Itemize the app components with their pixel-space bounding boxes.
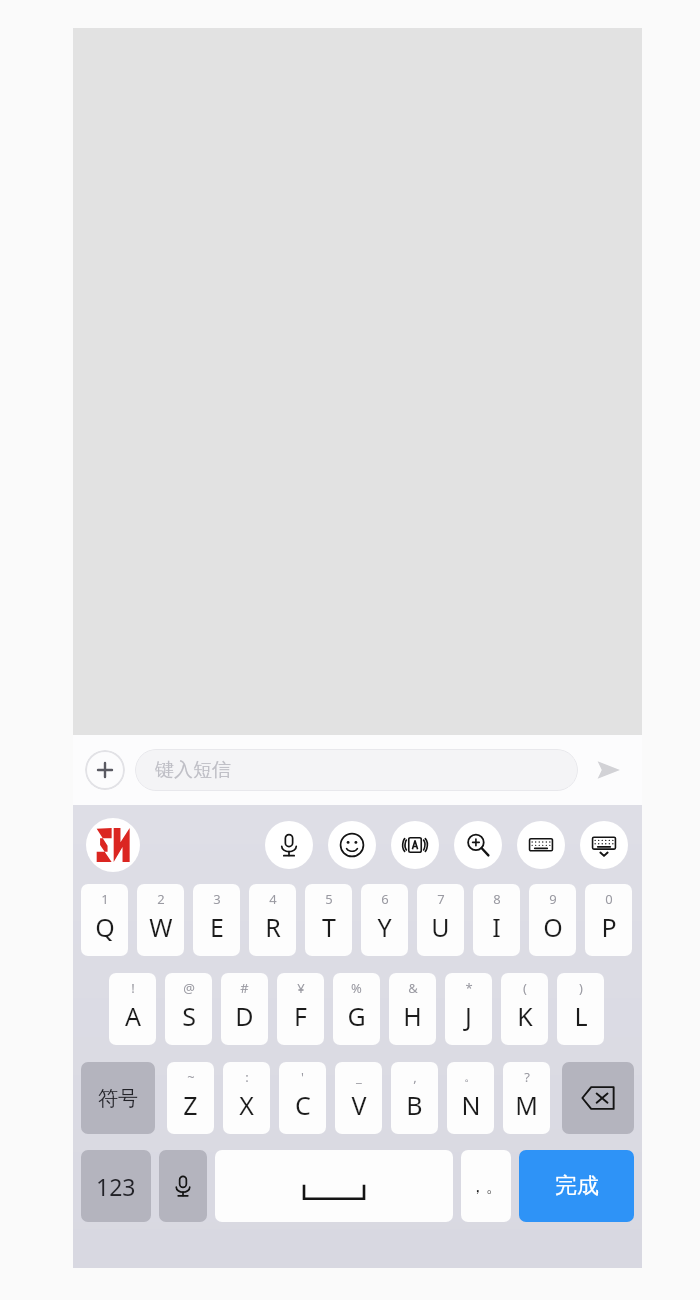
staticText: U — [431, 910, 450, 944]
button[interactable]: Voice input — [265, 821, 313, 869]
staticText: S — [182, 999, 196, 1033]
staticText: , — [413, 1068, 417, 1086]
button[interactable]: & — [389, 973, 436, 1045]
staticText: 1 — [101, 890, 109, 908]
staticText: * — [465, 979, 473, 997]
button[interactable]: 符号 — [81, 1062, 155, 1134]
staticText: 。 — [464, 1068, 477, 1084]
staticText: G — [347, 999, 366, 1033]
button[interactable]: ' — [279, 1062, 326, 1134]
staticText: 完成 — [555, 1172, 599, 1200]
staticText: ? — [524, 1068, 530, 1086]
button[interactable]: Send — [586, 748, 630, 792]
staticText: F — [294, 999, 307, 1033]
button[interactable]: 0 — [585, 884, 632, 956]
staticText: ¥ — [297, 979, 305, 997]
staticText: 6 — [381, 890, 389, 908]
staticText: 8 — [493, 890, 501, 908]
button[interactable]: 123 — [81, 1150, 151, 1222]
button[interactable]: 3 — [193, 884, 240, 956]
button[interactable]: , — [391, 1062, 438, 1134]
button[interactable]: 7 — [417, 884, 464, 956]
button[interactable]: * — [445, 973, 492, 1045]
staticText: I — [492, 910, 501, 944]
staticText: 123 — [96, 1171, 136, 1202]
staticText: A — [125, 999, 141, 1033]
staticText: Z — [183, 1088, 198, 1122]
staticText: W — [149, 910, 173, 944]
button[interactable]: ? — [503, 1062, 550, 1134]
staticText: ~ — [187, 1068, 195, 1086]
staticText: 键入短信 — [155, 758, 231, 782]
staticText: J — [465, 999, 472, 1033]
button[interactable]: 2 — [137, 884, 184, 956]
button[interactable]: ! — [109, 973, 156, 1045]
button[interactable]: Voice input — [159, 1150, 207, 1222]
staticText: M — [515, 1088, 538, 1122]
staticText: # — [240, 979, 249, 997]
staticText: Q — [95, 910, 115, 944]
button[interactable]: Translate — [391, 821, 439, 869]
button[interactable]: @ — [165, 973, 212, 1045]
staticText: R — [265, 910, 281, 944]
staticText: ' — [301, 1068, 304, 1086]
staticText: 2 — [157, 890, 165, 908]
button[interactable]: 6 — [361, 884, 408, 956]
staticText: : — [245, 1068, 249, 1086]
button[interactable]: ) — [557, 973, 604, 1045]
button[interactable]: Keyboard layout — [517, 821, 565, 869]
staticText: 0 — [605, 890, 613, 908]
button[interactable]: ( — [501, 973, 548, 1045]
staticText: T — [322, 910, 336, 944]
button[interactable]: 键入短信 — [135, 749, 578, 791]
staticText: D — [235, 999, 254, 1033]
button[interactable]: _ — [335, 1062, 382, 1134]
staticText: % — [351, 979, 362, 997]
button[interactable]: Backspace — [562, 1062, 634, 1134]
button[interactable]: 。 — [447, 1062, 494, 1134]
button[interactable]: ~ — [167, 1062, 214, 1134]
staticText: & — [408, 979, 418, 997]
staticText: C — [295, 1088, 311, 1122]
staticText: N — [461, 1088, 481, 1122]
staticText: ，。 — [469, 1176, 503, 1197]
button[interactable]: 1 — [81, 884, 128, 956]
staticText: 3 — [213, 890, 221, 908]
button[interactable]: % — [333, 973, 380, 1045]
staticText: ) — [579, 979, 583, 997]
staticText: _ — [356, 1068, 362, 1086]
staticText: @ — [183, 979, 195, 997]
button[interactable]: ，。 — [461, 1150, 511, 1222]
button[interactable]: ¥ — [277, 973, 324, 1045]
staticText: B — [406, 1088, 423, 1122]
staticText: ( — [523, 979, 527, 997]
button[interactable]: Space — [215, 1150, 453, 1222]
staticText: X — [239, 1088, 254, 1122]
staticText: 4 — [269, 890, 277, 908]
button[interactable]: : — [223, 1062, 270, 1134]
staticText: H — [403, 999, 422, 1033]
staticText: O — [543, 910, 563, 944]
staticText: L — [574, 999, 588, 1033]
button[interactable]: 5 — [305, 884, 352, 956]
staticText: P — [601, 910, 617, 944]
button[interactable]: Emoji — [328, 821, 376, 869]
staticText: 7 — [437, 890, 445, 908]
staticText: K — [517, 999, 533, 1033]
button[interactable]: 8 — [473, 884, 520, 956]
button[interactable]: 完成 — [519, 1150, 634, 1222]
button[interactable]: 4 — [249, 884, 296, 956]
button[interactable]: Hide keyboard — [580, 821, 628, 869]
button[interactable]: Add attachment — [85, 750, 125, 790]
staticText: ! — [131, 979, 135, 997]
staticText: 符号 — [98, 1086, 138, 1111]
button[interactable]: Sogou input method — [86, 818, 140, 872]
staticText: 9 — [549, 890, 557, 908]
staticText: Y — [377, 910, 392, 944]
button[interactable]: Search — [454, 821, 502, 869]
button[interactable]: # — [221, 973, 268, 1045]
staticText: E — [210, 910, 224, 944]
button[interactable]: 9 — [529, 884, 576, 956]
staticText: 5 — [325, 890, 333, 908]
staticText: V — [351, 1088, 367, 1122]
